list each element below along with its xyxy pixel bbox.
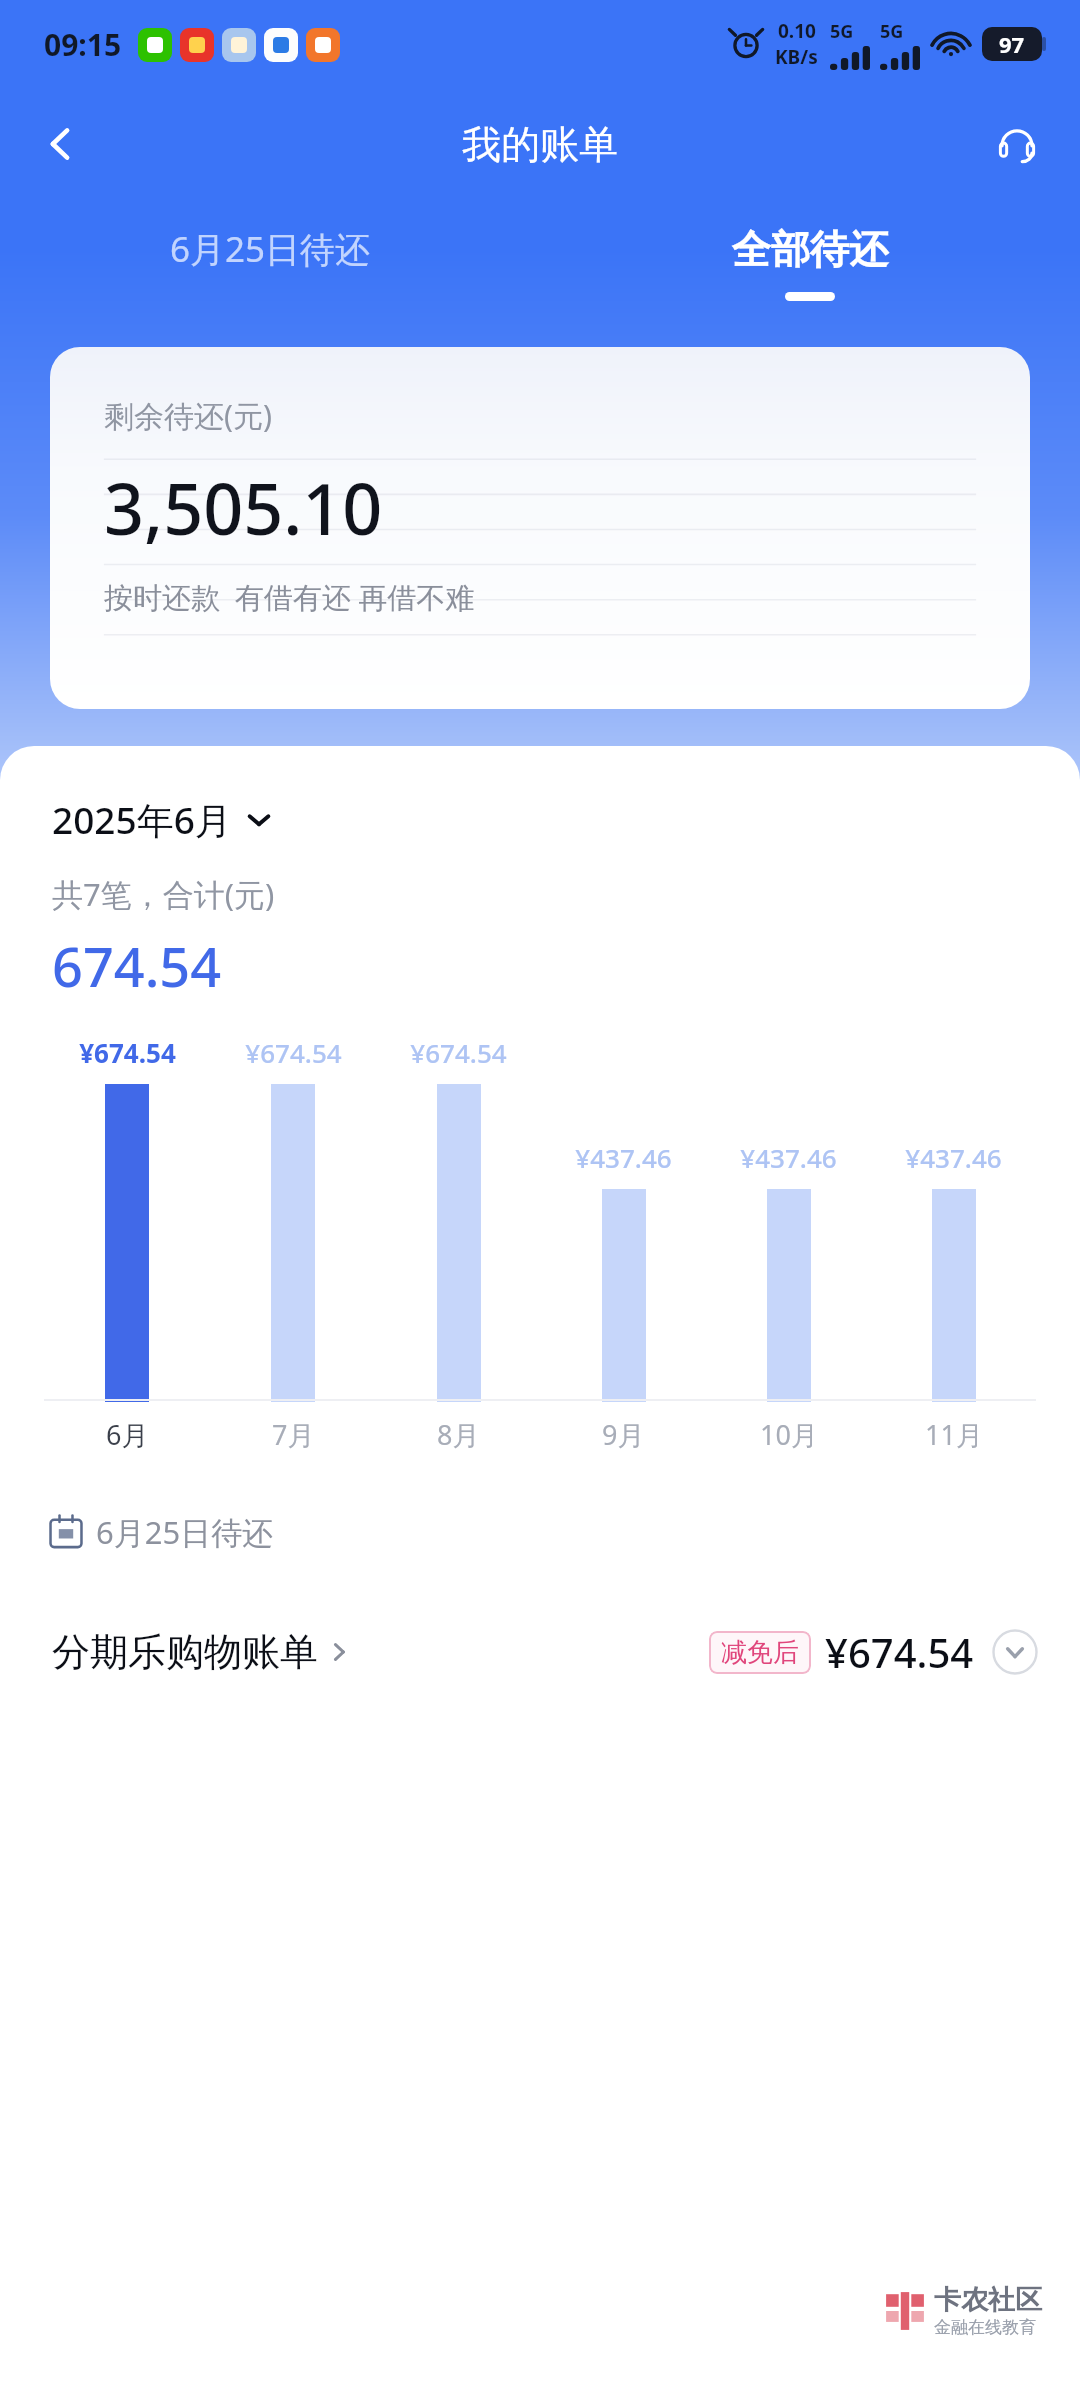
staticText: 我的账单 <box>462 120 618 169</box>
staticText: KB/s <box>775 44 818 70</box>
staticText: 6月 <box>106 1416 149 1453</box>
staticText: 0.10 <box>778 18 816 44</box>
staticText: 8月 <box>437 1416 480 1453</box>
staticText: ¥674.54 <box>825 1625 974 1679</box>
staticText: 10月 <box>760 1416 818 1453</box>
staticText: ¥674.54 <box>245 1035 342 1070</box>
staticText: 6月25日待还 <box>96 1511 274 1553</box>
staticText: 3,505.10 <box>104 460 383 555</box>
staticText: 金融在线教育 <box>934 2317 1036 2338</box>
staticText: ¥437.46 <box>740 1140 837 1175</box>
staticText: 分期乐购物账单 <box>52 1628 318 1676</box>
staticText: ¥437.46 <box>905 1140 1002 1175</box>
staticText: 按时还款 有借有还 再借不难 <box>104 577 475 617</box>
button[interactable]: 剩余待还(元) <box>50 347 1030 709</box>
button[interactable]: Expand <box>992 1629 1038 1675</box>
button[interactable]: 2025年6月 <box>52 794 272 845</box>
staticText: 97 <box>999 29 1025 59</box>
staticText: 2025年6月 <box>52 794 232 845</box>
staticText: ¥674.54 <box>410 1035 507 1070</box>
button[interactable]: ¥674.54 <box>44 1035 210 1453</box>
staticText: 剩余待还(元) <box>104 395 272 436</box>
staticText: 共7笔，合计(元) <box>52 873 275 915</box>
staticText: 5G <box>880 19 904 44</box>
button[interactable]: 全部待还 <box>540 200 1080 325</box>
button[interactable]: ¥437.46 <box>871 1035 1036 1453</box>
staticText: 5G <box>830 19 854 44</box>
button[interactable]: ¥674.54 <box>376 1035 541 1453</box>
button[interactable]: ¥674.54 <box>210 1035 376 1453</box>
button[interactable]: Back <box>22 105 100 183</box>
button[interactable]: 6月25日待还 <box>0 200 540 325</box>
button[interactable]: ¥437.46 <box>541 1035 706 1453</box>
button[interactable]: 分期乐购物账单 <box>0 1597 1080 1707</box>
staticText: 11月 <box>925 1416 983 1453</box>
staticText: 全部待还 <box>732 225 888 274</box>
staticText: 674.54 <box>52 929 222 1003</box>
button[interactable]: Customer service <box>978 105 1056 183</box>
staticText: 6月25日待还 <box>170 225 371 273</box>
staticText: 卡农社区 <box>934 2283 1042 2317</box>
staticText: 7月 <box>272 1416 315 1453</box>
staticText: ¥674.54 <box>79 1035 176 1070</box>
staticText: 09:15 <box>44 24 122 65</box>
button[interactable]: ¥437.46 <box>706 1035 871 1453</box>
staticText: 减免后 <box>721 1636 799 1669</box>
staticText: 9月 <box>602 1416 645 1453</box>
staticText: ¥437.46 <box>575 1140 672 1175</box>
